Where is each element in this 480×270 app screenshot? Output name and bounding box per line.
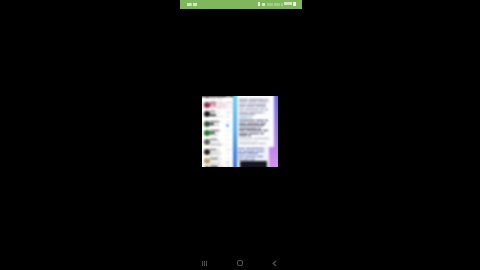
button[interactable] bbox=[202, 147, 233, 156]
button[interactable] bbox=[202, 101, 233, 110]
button[interactable] bbox=[202, 120, 233, 129]
button[interactable] bbox=[202, 138, 233, 147]
button[interactable]: Back bbox=[266, 255, 282, 270]
button[interactable] bbox=[202, 129, 233, 138]
button[interactable]: Home bbox=[232, 255, 248, 270]
button[interactable]: Recent apps bbox=[196, 255, 212, 270]
button[interactable] bbox=[202, 110, 233, 119]
button[interactable] bbox=[202, 157, 233, 166]
